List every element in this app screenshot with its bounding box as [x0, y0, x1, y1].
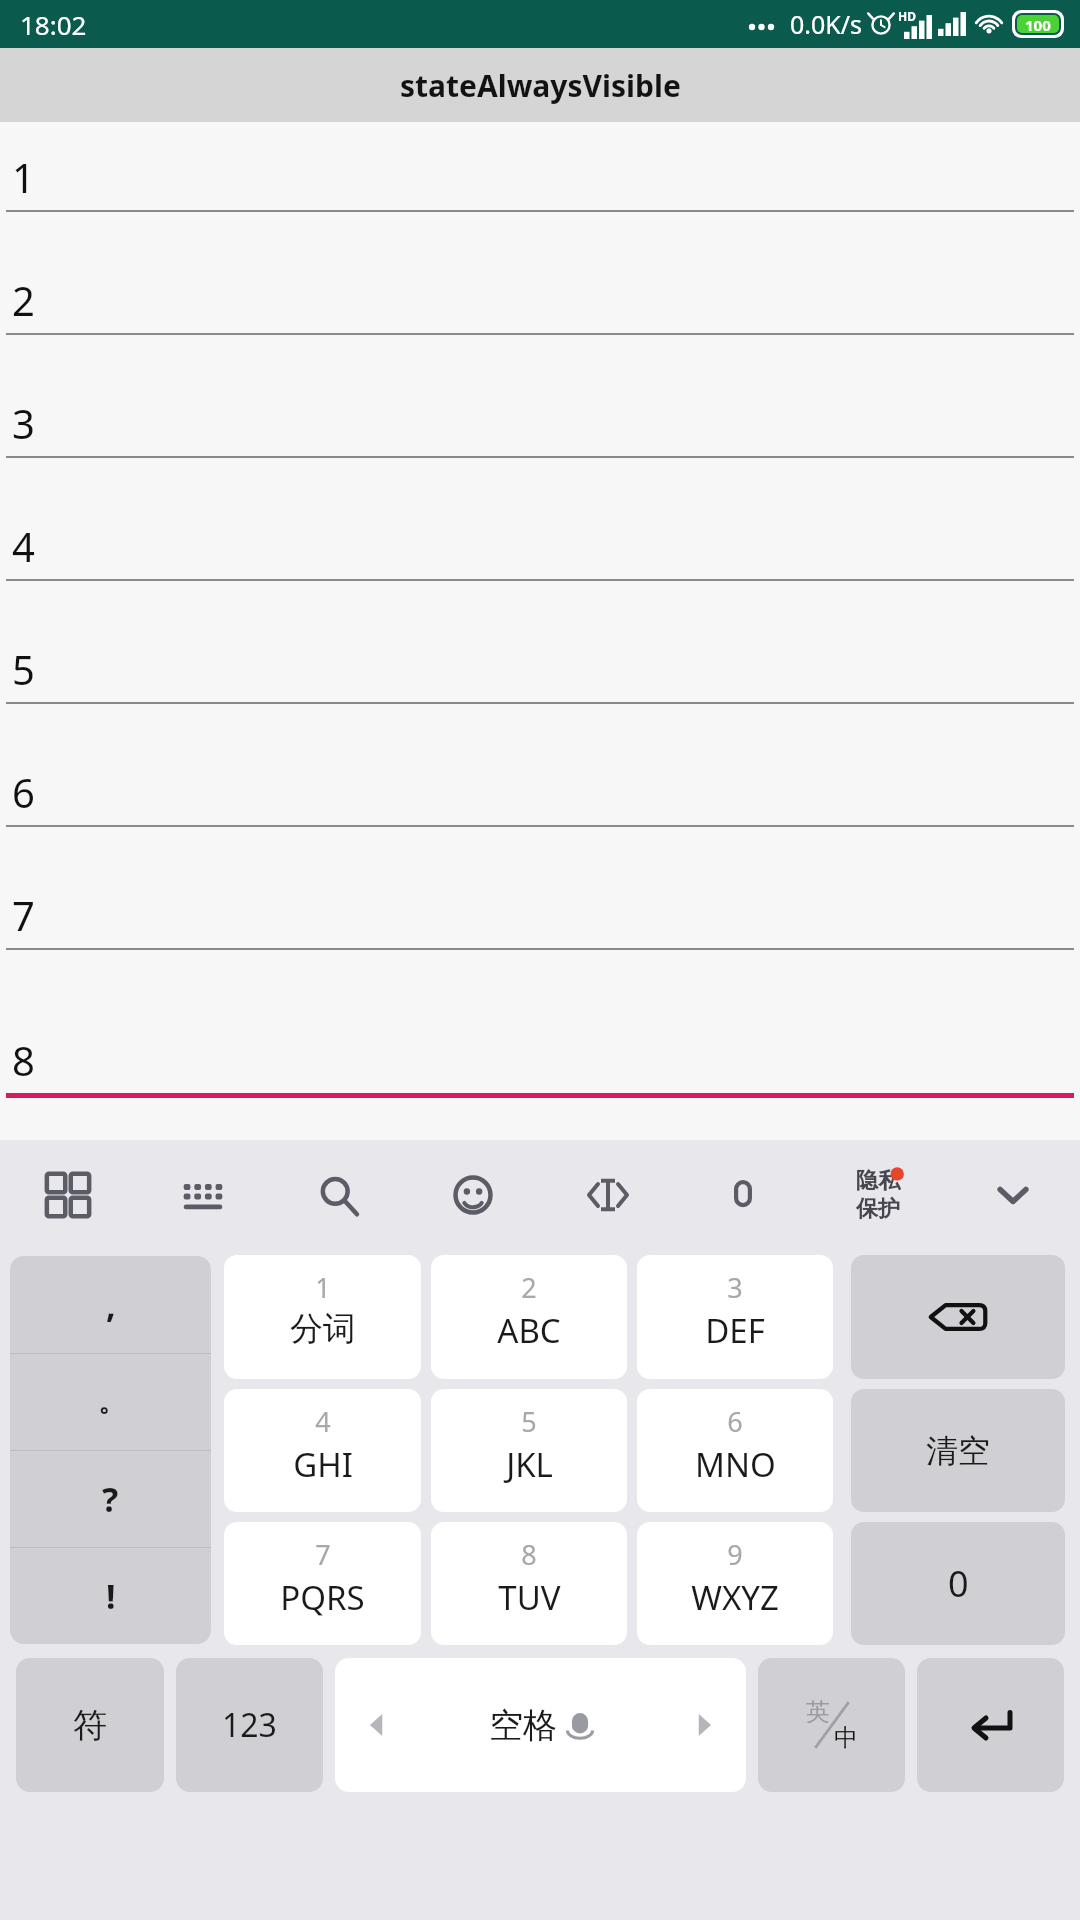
button[interactable]: 4: [0, 507, 1080, 630]
button[interactable]: 清空: [851, 1389, 1065, 1512]
staticText: 2: [521, 1269, 537, 1306]
button[interactable]: 9: [637, 1522, 833, 1645]
button[interactable]: 2: [0, 261, 1080, 384]
staticText: 。: [98, 1386, 124, 1419]
staticText: ABC: [497, 1308, 561, 1353]
button[interactable]: 3: [637, 1255, 833, 1379]
button[interactable]: 空格: [335, 1658, 746, 1792]
button[interactable]: 1: [0, 138, 1080, 261]
staticText: ,: [106, 1282, 116, 1328]
button[interactable]: ?: [10, 1451, 211, 1547]
button[interactable]: Keyboard layout: [135, 1140, 270, 1250]
button[interactable]: Voice input: [675, 1140, 810, 1250]
staticText: GHI: [293, 1442, 353, 1487]
staticText: 中: [834, 1723, 858, 1753]
staticText: 4: [12, 519, 35, 573]
staticText: 18:02: [20, 7, 87, 42]
button[interactable]: Backspace: [851, 1255, 1065, 1379]
button[interactable]: 2: [431, 1255, 627, 1379]
button[interactable]: !: [10, 1548, 211, 1644]
staticText: 123: [222, 1703, 277, 1747]
staticText: 8: [12, 1033, 35, 1087]
button[interactable]: 4: [224, 1389, 421, 1512]
staticText: stateAlwaysVisible: [400, 65, 681, 106]
staticText: ?: [102, 1476, 119, 1522]
button[interactable]: 。: [10, 1354, 211, 1450]
button[interactable]: 0: [851, 1522, 1065, 1645]
staticText: HD: [898, 8, 916, 24]
button[interactable]: 7: [0, 876, 1080, 999]
staticText: 符: [73, 1704, 107, 1747]
button[interactable]: Hide keyboard: [945, 1140, 1080, 1250]
staticText: 隐私: [856, 1167, 900, 1195]
button[interactable]: Privacy protection: [810, 1140, 945, 1250]
button[interactable]: 符: [16, 1658, 164, 1792]
staticText: 9: [727, 1536, 743, 1573]
staticText: 空格: [489, 1704, 557, 1747]
button[interactable]: Enter: [917, 1658, 1064, 1792]
button[interactable]: Move cursor: [540, 1140, 675, 1250]
staticText: 3: [12, 396, 35, 450]
button[interactable]: 7: [224, 1522, 421, 1645]
button[interactable]: 8: [431, 1522, 627, 1645]
staticText: TUV: [498, 1575, 561, 1620]
button[interactable]: 3: [0, 384, 1080, 507]
staticText: 5: [521, 1403, 537, 1440]
staticText: 6: [727, 1403, 743, 1440]
staticText: 6: [12, 765, 35, 819]
button[interactable]: 6: [637, 1389, 833, 1512]
button[interactable]: 1: [224, 1255, 421, 1379]
staticText: 1: [315, 1269, 331, 1306]
staticText: 5: [12, 642, 35, 696]
button[interactable]: Emoji: [405, 1140, 540, 1250]
staticText: 0: [948, 1559, 969, 1608]
staticText: 清空: [926, 1431, 990, 1471]
button[interactable]: ,: [10, 1256, 211, 1353]
staticText: 7: [12, 888, 35, 942]
staticText: MNO: [695, 1442, 776, 1487]
button[interactable]: Search: [270, 1140, 405, 1250]
staticText: 英: [806, 1697, 830, 1727]
staticText: 0.0K/s: [790, 7, 863, 41]
staticText: 7: [315, 1536, 331, 1573]
staticText: 1: [12, 150, 35, 204]
staticText: !: [106, 1573, 116, 1619]
button[interactable]: 123: [176, 1658, 323, 1792]
staticText: DEF: [705, 1308, 765, 1353]
staticText: 100: [1025, 15, 1051, 33]
staticText: 4: [315, 1403, 331, 1440]
staticText: 2: [12, 273, 35, 327]
button[interactable]: 8: [0, 1021, 1080, 1098]
button[interactable]: 5: [0, 630, 1080, 753]
staticText: WXYZ: [691, 1575, 779, 1620]
staticText: PQRS: [280, 1575, 365, 1620]
button[interactable]: 5: [431, 1389, 627, 1512]
staticText: 保护: [856, 1195, 900, 1223]
staticText: 3: [727, 1269, 743, 1306]
staticText: 分词: [290, 1308, 356, 1350]
staticText: 8: [521, 1536, 537, 1573]
button[interactable]: 英: [758, 1658, 905, 1792]
button[interactable]: Panels: [0, 1140, 135, 1250]
button[interactable]: 6: [0, 753, 1080, 876]
staticText: JKL: [506, 1442, 553, 1487]
